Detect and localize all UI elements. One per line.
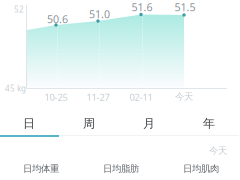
staticText: 日均肌肉 <box>183 163 219 174</box>
staticText: 年 <box>203 116 215 131</box>
staticText: 10-25 <box>44 91 67 103</box>
button[interactable]: 月 <box>119 112 179 135</box>
staticText: 02-11 <box>129 91 152 103</box>
staticText: 50.6 <box>47 12 68 26</box>
staticText: 月 <box>143 116 155 131</box>
staticText: 今天 <box>175 91 193 102</box>
button[interactable]: 周 <box>59 112 119 135</box>
staticText: 51.0 <box>89 7 110 21</box>
staticText: 日 <box>23 116 35 131</box>
staticText: 51.6 <box>131 0 152 14</box>
staticText: 51.5 <box>174 0 195 14</box>
staticText: 日均脂肪 <box>103 163 139 174</box>
staticText: 52 <box>14 4 24 15</box>
staticText: 周 <box>83 116 95 131</box>
staticText: 今天 <box>209 145 227 156</box>
staticText: 45 kg <box>5 83 26 94</box>
button[interactable]: 年 <box>179 112 239 135</box>
staticText: 日均体重 <box>23 163 59 174</box>
staticText: 11-27 <box>86 91 109 103</box>
button[interactable]: 日 <box>0 112 59 135</box>
